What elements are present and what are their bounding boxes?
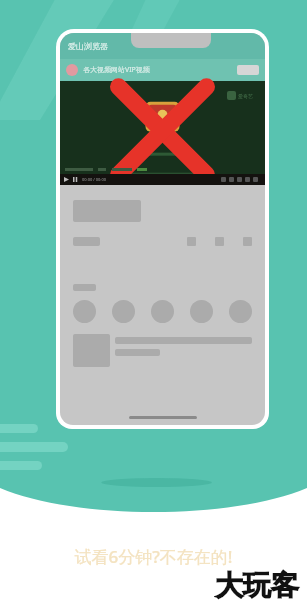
button[interactable]: Shortcut — [229, 300, 252, 323]
button[interactable]: 各大视频网站VIP视频 — [60, 59, 265, 81]
button[interactable] — [73, 334, 252, 367]
staticText: 爱山浏览器 — [68, 41, 108, 51]
button[interactable]: Shortcut — [73, 300, 96, 323]
button[interactable]: Shortcut — [151, 300, 174, 323]
button[interactable]: Video controls — [60, 174, 265, 185]
button[interactable]: Shortcut — [112, 300, 135, 323]
staticText: 各大视频网站VIP视频 — [83, 65, 150, 75]
staticText: 大玩客 — [215, 568, 299, 603]
staticText: 试看6分钟?不存在的! — [0, 545, 307, 568]
staticText: 00:00 / 00:00 — [82, 177, 107, 182]
button[interactable]: Shortcut — [190, 300, 213, 323]
staticText: 爱奇艺 — [238, 93, 253, 99]
